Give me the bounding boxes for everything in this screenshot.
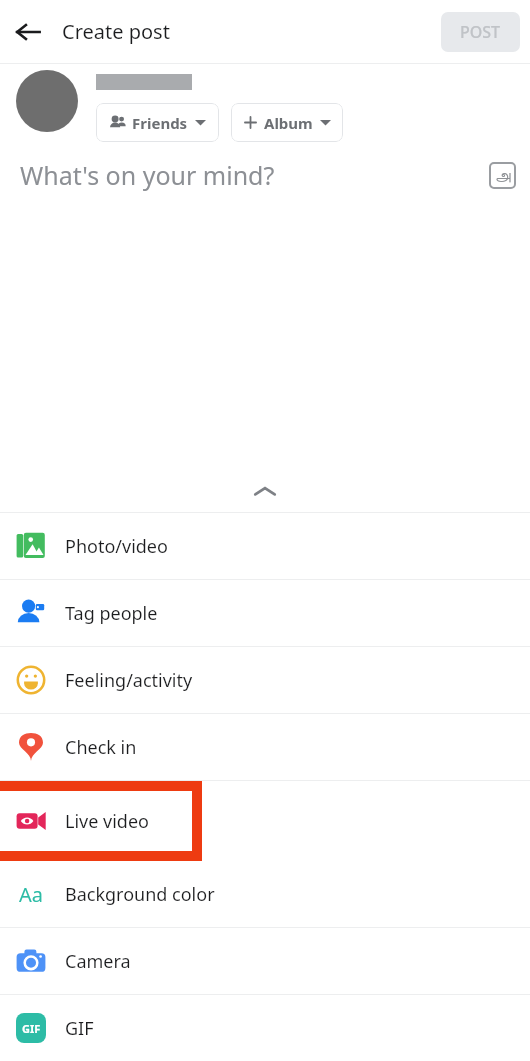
staticText: POST	[460, 21, 501, 43]
button[interactable]: Tag people	[0, 580, 530, 646]
button[interactable]: Aa	[0, 861, 530, 927]
button[interactable]: Check in	[0, 714, 530, 780]
button[interactable]: Camera	[0, 928, 530, 994]
button[interactable]: Back	[6, 10, 50, 54]
button[interactable]: Collapse	[0, 470, 530, 512]
staticText: Photo/video	[65, 534, 168, 559]
button[interactable]: POST	[441, 12, 520, 52]
button[interactable]: Change keyboard language	[484, 157, 520, 193]
button[interactable]: Photo/video	[0, 513, 530, 579]
staticText: Create post	[62, 18, 170, 45]
staticText: Tag people	[65, 601, 158, 626]
button[interactable]: Feeling/activity	[0, 647, 530, 713]
staticText: Check in	[65, 735, 137, 760]
staticText: Friends	[132, 113, 188, 133]
button[interactable]: GIF	[0, 995, 530, 1061]
staticText: அ	[495, 168, 511, 183]
staticText: GIF	[65, 1016, 94, 1041]
staticText: What's on your mind?	[20, 158, 275, 192]
staticText: GIF	[22, 1021, 41, 1036]
button[interactable]: Album	[231, 103, 343, 142]
button[interactable]: Live video	[0, 788, 530, 854]
staticText: Camera	[65, 949, 131, 974]
staticText: Live video	[65, 809, 149, 834]
staticText: Album	[264, 113, 313, 133]
staticText: Feeling/activity	[65, 668, 193, 693]
button[interactable]: Friends	[96, 103, 219, 142]
staticText: Background color	[65, 882, 215, 907]
staticText: Aa	[19, 881, 43, 908]
